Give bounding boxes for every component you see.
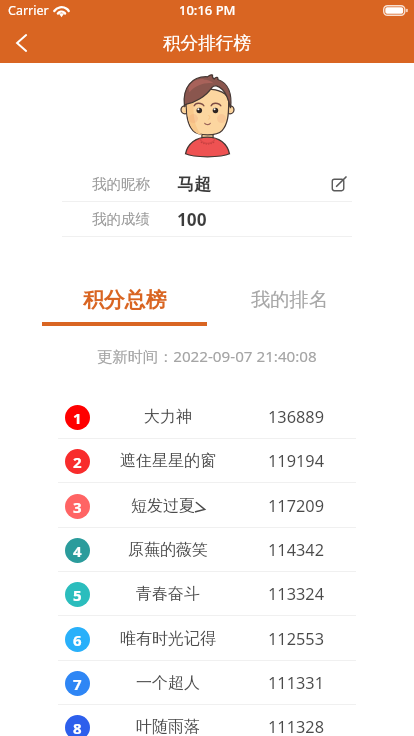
staticText: 马超 bbox=[177, 173, 212, 195]
staticText: 7 bbox=[73, 674, 82, 694]
staticText: 短发过夏 bbox=[131, 496, 195, 516]
button[interactable]: Back bbox=[0, 21, 43, 64]
button[interactable]: 2 bbox=[0, 441, 414, 482]
staticText: 叶随雨落 bbox=[136, 717, 200, 736]
staticText: 遮住星星的窗 bbox=[120, 451, 216, 471]
staticText: 2 bbox=[73, 452, 82, 472]
staticText: 114342 bbox=[246, 539, 346, 561]
staticText: 唯有时光记得 bbox=[120, 629, 216, 649]
staticText: 10:16 PM bbox=[179, 1, 236, 19]
staticText: 100 bbox=[177, 208, 207, 231]
staticText: 8 bbox=[73, 718, 82, 736]
button[interactable]: 8 bbox=[0, 707, 414, 736]
staticText: 3 bbox=[73, 497, 82, 517]
staticText: 111328 bbox=[246, 716, 346, 736]
staticText: 我的排名 bbox=[251, 287, 329, 311]
button[interactable]: 积分总榜 bbox=[42, 272, 207, 320]
staticText: 大力神 bbox=[144, 407, 192, 427]
button[interactable]: Edit nickname bbox=[326, 171, 352, 197]
staticText: Carrier bbox=[8, 2, 49, 19]
button[interactable]: 1 bbox=[0, 397, 414, 438]
staticText: 我的成绩 bbox=[92, 210, 150, 228]
staticText: 积分总榜 bbox=[83, 287, 167, 313]
button[interactable]: 4 bbox=[0, 530, 414, 571]
staticText: 5 bbox=[73, 585, 82, 605]
button[interactable]: 3 bbox=[0, 486, 414, 527]
button[interactable]: 7 bbox=[0, 663, 414, 704]
staticText: 119194 bbox=[246, 450, 346, 472]
staticText: 112553 bbox=[246, 628, 346, 650]
staticText: 117209 bbox=[246, 495, 346, 517]
button[interactable]: 我的排名 bbox=[207, 272, 372, 320]
staticText: 原蕪的薇笑 bbox=[128, 540, 208, 560]
button[interactable]: 5 bbox=[0, 574, 414, 615]
staticText: 一个超人 bbox=[136, 673, 200, 693]
staticText: 4 bbox=[73, 541, 82, 561]
staticText: 113324 bbox=[246, 583, 346, 605]
staticText: 更新时间：2022-09-07 21:40:08 bbox=[0, 346, 414, 367]
staticText: 青春奋斗 bbox=[136, 584, 200, 604]
staticText: 1 bbox=[73, 408, 82, 428]
staticText: 6 bbox=[73, 630, 82, 650]
button[interactable]: 6 bbox=[0, 619, 414, 660]
staticText: 111331 bbox=[246, 672, 346, 694]
staticText: 136889 bbox=[246, 406, 346, 428]
staticText: 积分排行榜 bbox=[163, 32, 251, 54]
staticText: 我的昵称 bbox=[92, 175, 150, 193]
